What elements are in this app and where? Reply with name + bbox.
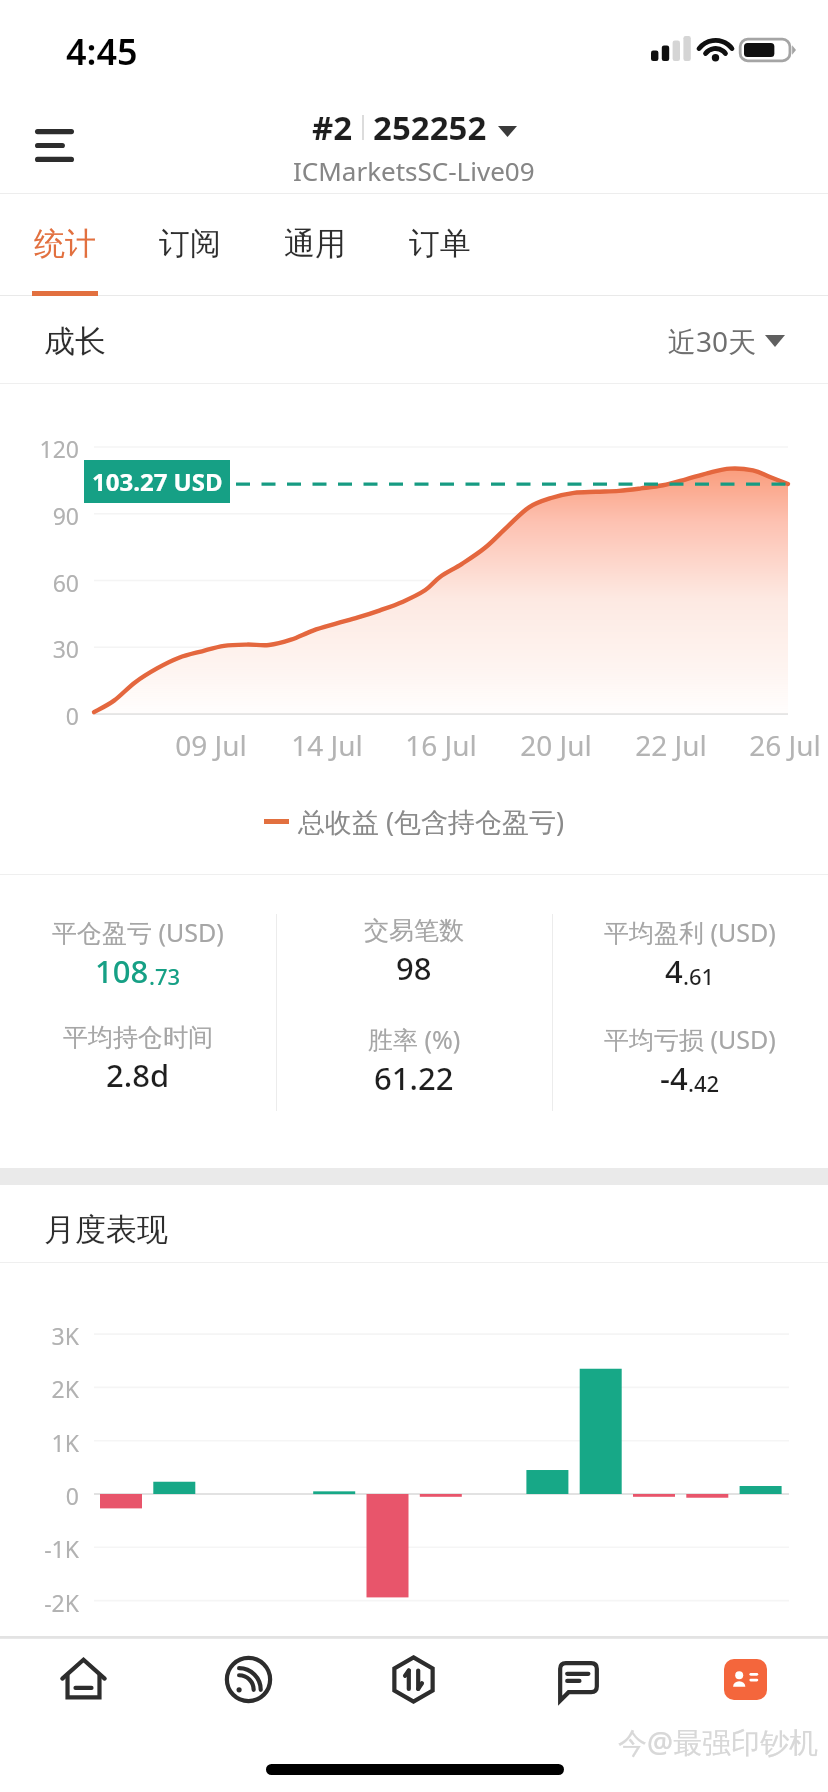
staticText: 120 — [0, 433, 79, 464]
button[interactable]: 订单 — [407, 193, 473, 296]
staticText: 26 Jul — [725, 726, 828, 764]
staticText: 98 — [396, 947, 432, 989]
staticText: .42 — [688, 1068, 720, 1098]
staticText: 20 Jul — [496, 726, 616, 764]
staticText: 103.27 USD — [92, 465, 223, 498]
staticText: ICMarketsSC-Live09 — [293, 153, 535, 188]
staticText: 平仓盈亏 (USD) — [52, 915, 224, 949]
staticText: 0 — [0, 700, 79, 731]
staticText: 22 Jul — [611, 726, 731, 764]
staticText: 2.8d — [106, 1054, 170, 1096]
button[interactable]: Trade — [353, 1638, 473, 1721]
staticText: -1K — [0, 1533, 79, 1564]
staticText: 订阅 — [159, 224, 221, 263]
staticText: 16 Jul — [381, 726, 501, 764]
staticText: 90 — [0, 500, 79, 531]
staticText: 4 — [665, 950, 683, 992]
staticText: 近30天 — [668, 322, 757, 360]
staticText: 月度表现 — [44, 1210, 168, 1249]
staticText: 60 — [0, 567, 79, 598]
button[interactable]: Account — [685, 1638, 805, 1721]
staticText: 胜率 (%) — [368, 1022, 461, 1056]
staticText: -2K — [0, 1587, 79, 1618]
staticText: 统计 — [34, 224, 96, 263]
button[interactable]: Menu — [0, 95, 108, 193]
button[interactable]: 订阅 — [157, 193, 223, 296]
staticText: -4 — [660, 1057, 688, 1099]
staticText: 平均盈利 (USD) — [604, 915, 776, 949]
staticText: .61 — [683, 961, 715, 991]
staticText: 3K — [0, 1320, 79, 1351]
staticText: .73 — [149, 961, 181, 991]
staticText: 0 — [0, 1480, 79, 1511]
staticText: 4:45 — [66, 27, 138, 76]
staticText: 1K — [0, 1427, 79, 1458]
staticText: 09 Jul — [151, 726, 271, 764]
staticText: 平均持仓时间 — [63, 1022, 213, 1053]
button[interactable]: Home — [23, 1638, 143, 1721]
button[interactable]: 统计 — [32, 193, 98, 296]
staticText: #2 — [312, 105, 353, 150]
staticText: 30 — [0, 633, 79, 664]
button[interactable]: #2 — [293, 105, 535, 188]
staticText: 61.22 — [374, 1057, 454, 1099]
staticText: 订单 — [409, 224, 471, 263]
button[interactable]: 近30天 — [668, 322, 785, 360]
staticText: 今@最强印钞机 — [618, 1722, 819, 1762]
staticText: 总收益 (包含持仓盈亏) — [298, 803, 565, 840]
staticText: 108 — [95, 950, 149, 992]
staticText: 交易笔数 — [364, 915, 464, 946]
button[interactable]: Signals — [188, 1638, 308, 1721]
staticText: 通用 — [284, 224, 346, 263]
staticText: 成长 — [44, 322, 106, 361]
button[interactable]: Messages — [518, 1638, 638, 1721]
staticText: 平均亏损 (USD) — [604, 1022, 776, 1056]
staticText: 252252 — [373, 105, 487, 150]
button[interactable]: 通用 — [282, 193, 348, 296]
staticText: 2K — [0, 1373, 79, 1404]
staticText: 14 Jul — [267, 726, 387, 764]
